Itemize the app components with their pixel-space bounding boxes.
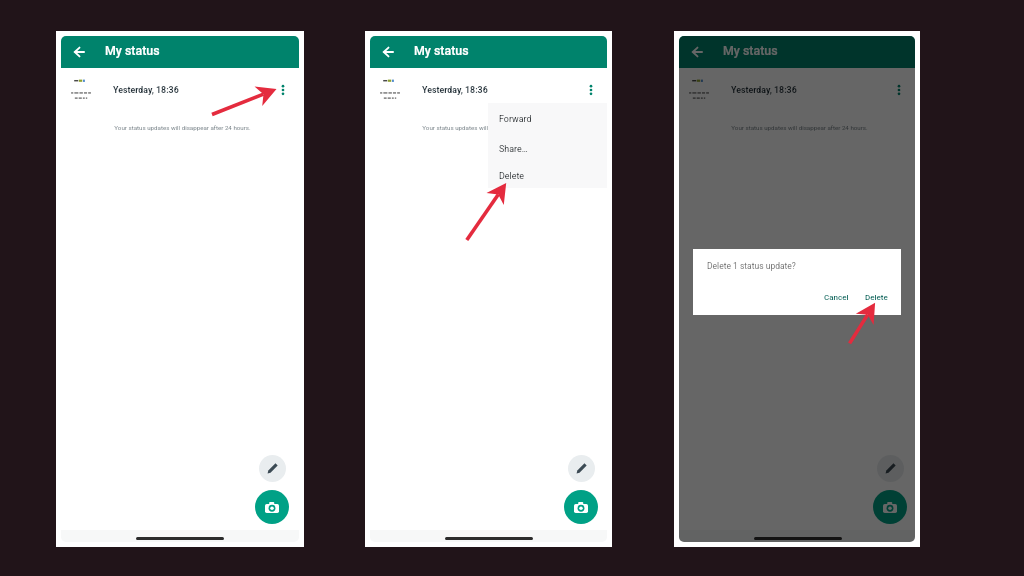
staticText: Delete 1 status update? bbox=[707, 261, 796, 271]
staticText: Forward bbox=[499, 114, 532, 124]
staticText: My status bbox=[723, 43, 778, 58]
button[interactable]: Delete bbox=[488, 164, 607, 188]
button[interactable]: Yesterday, 18:36 bbox=[61, 74, 299, 106]
button[interactable]: Write status bbox=[568, 455, 595, 482]
staticText: Your status updates will disappear after… bbox=[422, 124, 559, 131]
staticText: Share… bbox=[499, 144, 528, 154]
staticText: My status bbox=[105, 43, 160, 58]
button[interactable]: Back bbox=[376, 40, 400, 64]
button[interactable]: Camera bbox=[873, 490, 907, 524]
button[interactable]: Back bbox=[67, 40, 91, 64]
staticText: Your status updates will disappear after… bbox=[731, 124, 868, 131]
staticText: Delete bbox=[865, 293, 888, 302]
button[interactable]: More options bbox=[272, 79, 294, 101]
button[interactable]: Share… bbox=[488, 134, 607, 164]
button[interactable]: Yesterday, 18:36 bbox=[679, 74, 915, 106]
button[interactable]: Yesterday, 18:36 bbox=[370, 74, 607, 106]
button[interactable]: Delete bbox=[857, 289, 896, 306]
staticText: Cancel bbox=[824, 293, 849, 302]
button[interactable]: Back bbox=[685, 40, 709, 64]
button[interactable]: More options bbox=[888, 79, 910, 101]
button[interactable]: More options bbox=[580, 79, 602, 101]
staticText: My status bbox=[414, 43, 469, 58]
staticText: Your status updates will disappear after… bbox=[114, 124, 251, 131]
button[interactable]: Camera bbox=[255, 490, 289, 524]
staticText: Yesterday, 18:36 bbox=[113, 85, 179, 95]
button[interactable]: Camera bbox=[564, 490, 598, 524]
button[interactable]: Cancel bbox=[816, 289, 857, 306]
staticText: Yesterday, 18:36 bbox=[731, 85, 797, 95]
button[interactable]: Forward bbox=[488, 104, 607, 134]
button[interactable]: Write status bbox=[877, 455, 904, 482]
staticText: Yesterday, 18:36 bbox=[422, 85, 488, 95]
button[interactable]: Write status bbox=[259, 455, 286, 482]
staticText: Delete bbox=[499, 171, 525, 181]
